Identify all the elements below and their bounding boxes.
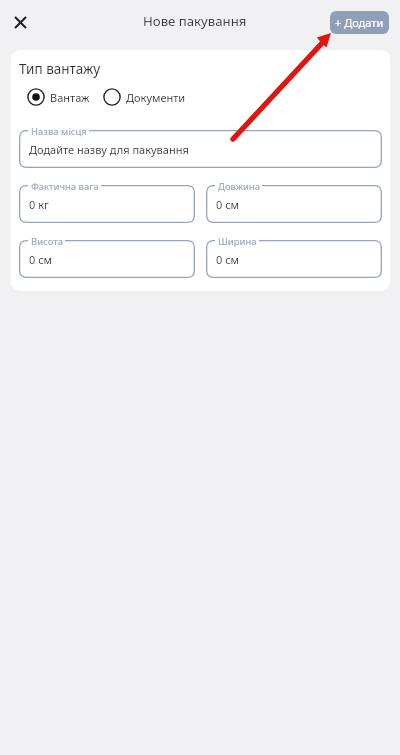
button[interactable]: Ширина (206, 240, 382, 278)
staticText: Тип вантажу (19, 60, 101, 78)
staticText: Нове пакування (143, 12, 247, 30)
staticText: Вантаж (50, 90, 90, 105)
staticText: Довжина (218, 180, 260, 193)
staticText: 0 см (29, 252, 53, 267)
staticText: Ширина (218, 235, 257, 248)
button[interactable]: Вантаж (27, 88, 90, 106)
staticText: Додайте назву для пакування (29, 142, 189, 157)
staticText: 0 кг (29, 197, 49, 212)
staticText: Назва місця (31, 125, 87, 138)
button[interactable]: Висота (19, 240, 195, 278)
staticText: 0 см (216, 197, 240, 212)
button[interactable]: Назва місця (19, 130, 382, 168)
staticText: Документи (126, 90, 186, 105)
button[interactable]: Close (4, 6, 36, 38)
staticText: Висота (31, 235, 63, 248)
staticText: + Додати (335, 15, 384, 30)
staticText: 0 см (216, 252, 240, 267)
button[interactable]: Фактична вага (19, 185, 195, 223)
button[interactable]: + Додати (330, 11, 389, 34)
staticText: Фактична вага (31, 180, 99, 193)
button[interactable]: Довжина (206, 185, 382, 223)
button[interactable]: Документи (103, 88, 186, 106)
